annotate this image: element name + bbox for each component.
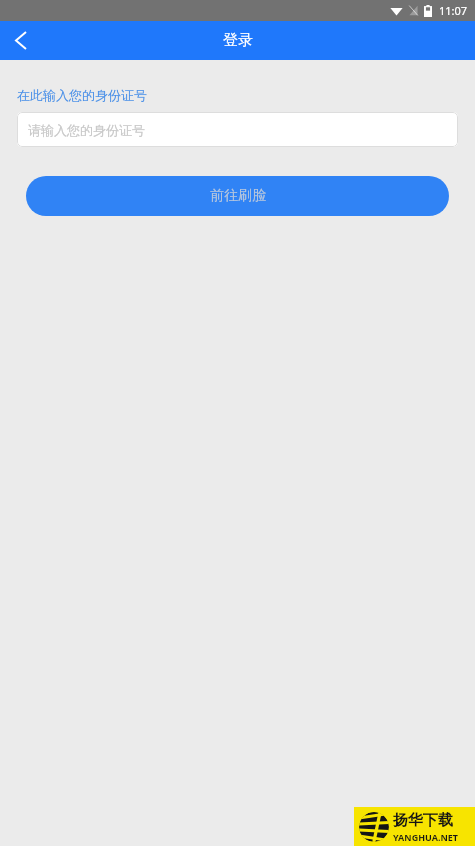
button[interactable]: 请输入您的身份证号 xyxy=(17,112,458,147)
button[interactable]: 前往刷脸 xyxy=(26,176,449,216)
button[interactable]: Back xyxy=(0,21,42,60)
staticText: 登录 xyxy=(223,31,253,50)
staticText: 扬华下载 xyxy=(393,811,453,830)
staticText: 前往刷脸 xyxy=(210,187,266,205)
staticText: 在此输入您的身份证号 xyxy=(17,87,147,103)
staticText: 11:07 xyxy=(439,3,468,18)
staticText: YANGHUA.NET xyxy=(393,831,459,843)
staticText: 请输入您的身份证号 xyxy=(28,122,145,138)
